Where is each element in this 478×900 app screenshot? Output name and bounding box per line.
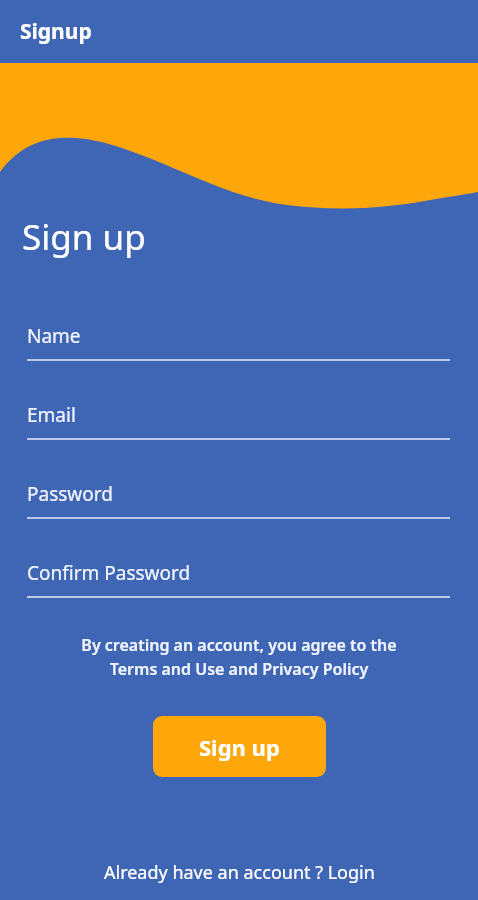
button[interactable]: Name xyxy=(27,323,450,361)
staticText: By creating an account, you agree to the… xyxy=(16,634,462,680)
staticText: Signup xyxy=(20,17,92,46)
staticText: Sign up xyxy=(199,732,280,762)
button[interactable]: Already have an account ? Login xyxy=(0,844,478,900)
staticText: Confirm Password xyxy=(27,560,191,586)
staticText: Name xyxy=(27,323,81,349)
button[interactable]: Sign up xyxy=(153,716,326,777)
staticText: Password xyxy=(27,481,113,507)
staticText: Already have an account ? Login xyxy=(104,860,375,885)
button[interactable]: Password xyxy=(27,481,450,519)
button[interactable]: Confirm Password xyxy=(27,560,450,598)
staticText: Email xyxy=(27,402,76,428)
button[interactable]: Email xyxy=(27,402,450,440)
staticText: Sign up xyxy=(22,213,146,261)
